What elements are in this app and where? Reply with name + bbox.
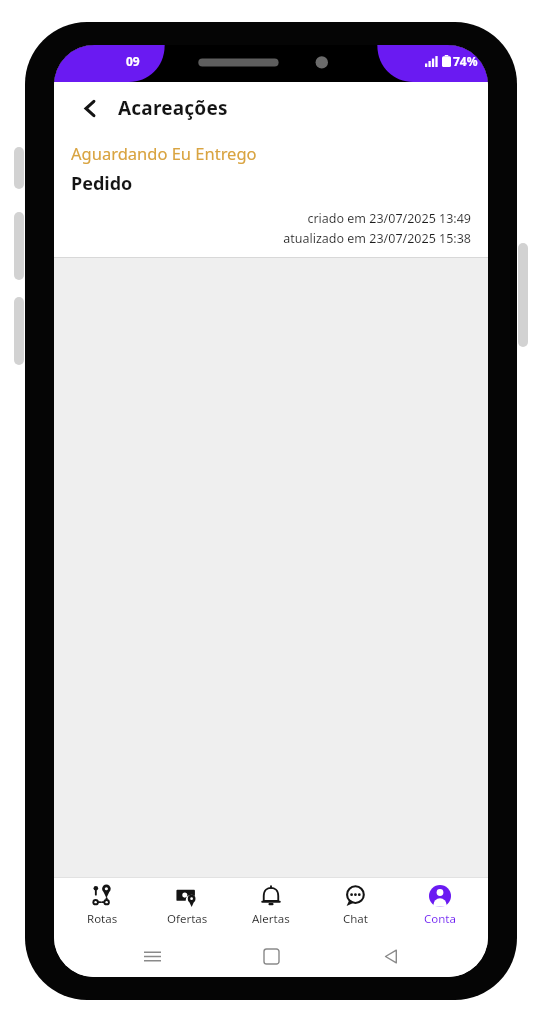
staticText: Alertas [252,911,290,927]
staticText: Pedido [71,171,133,196]
staticText: 09 [126,53,140,69]
staticText: Acareações [118,95,228,121]
staticText: Chat [343,911,368,927]
staticText: atualizado em 23/07/2025 15:38 [71,230,471,247]
button[interactable]: Início [249,935,293,977]
button[interactable]: Voltar [70,88,110,128]
staticText: Conta [424,911,456,927]
button[interactable]: Rotas [66,877,138,935]
staticText: 74% [453,53,478,69]
button[interactable]: Alertas [235,877,307,935]
staticText: Aguardando Eu Entrego [71,142,257,164]
staticText: criado em 23/07/2025 13:49 [71,210,471,227]
button[interactable]: Recentes [130,935,174,977]
staticText: Rotas [87,911,118,927]
button[interactable]: Voltar [369,935,413,977]
button[interactable]: Conta [404,877,476,935]
button[interactable]: Chat [319,877,391,935]
staticText: Ofertas [167,911,208,927]
button[interactable]: Ofertas [151,877,223,935]
